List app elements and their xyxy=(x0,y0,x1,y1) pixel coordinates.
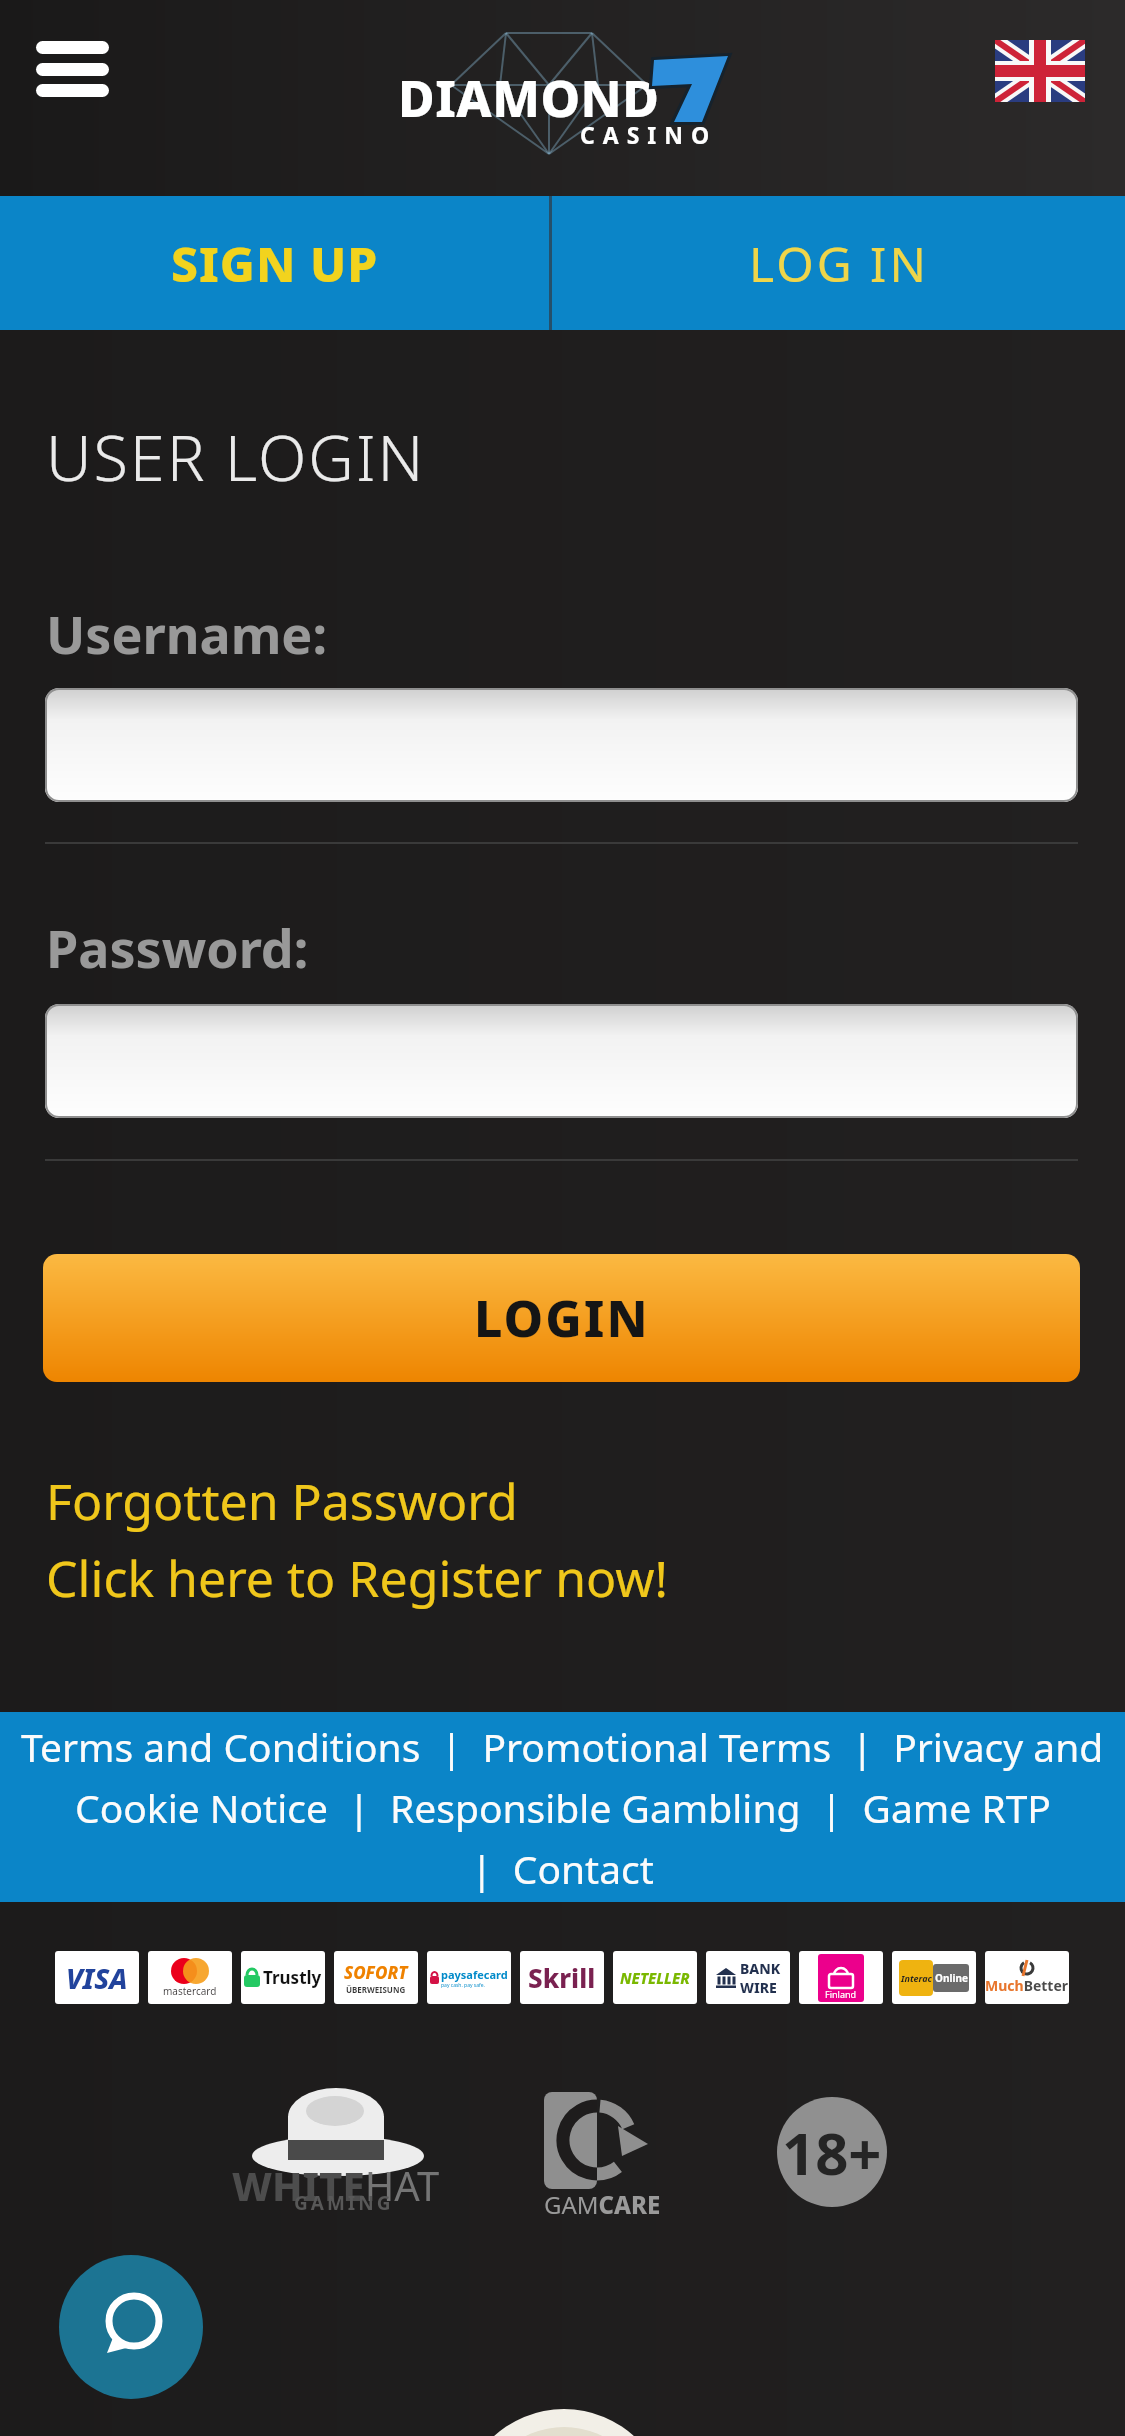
staticText: BANK xyxy=(740,1959,781,1978)
staticText: NETELLER xyxy=(620,1968,690,1988)
staticText: WIRE xyxy=(740,1978,777,1997)
staticText: LOG IN xyxy=(749,231,929,296)
button[interactable]: LOGIN xyxy=(43,1254,1080,1382)
staticText: GAMCARE xyxy=(544,2188,661,2221)
staticText: Password: xyxy=(46,912,309,983)
button[interactable]: | Contact xyxy=(471,1842,654,1895)
staticText: Finland xyxy=(825,1988,857,2000)
staticText: Online xyxy=(935,1971,968,1985)
staticText: VISA xyxy=(66,1959,128,1997)
staticText: SOFORT xyxy=(344,1961,408,1984)
button[interactable] xyxy=(59,2255,203,2399)
button[interactable] xyxy=(26,30,120,108)
staticText: CASINO xyxy=(580,119,718,150)
staticText: DIAMOND xyxy=(398,64,660,132)
staticText: Interac xyxy=(901,1972,932,1984)
staticText: LOGIN xyxy=(474,1284,650,1352)
staticText: MuchBetter xyxy=(985,1976,1069,1995)
staticText: WHITEHAT xyxy=(232,2158,440,2212)
button[interactable] xyxy=(995,40,1085,102)
staticText: Trustly xyxy=(263,1966,322,1989)
staticText: Username: xyxy=(46,598,328,669)
button[interactable]: LOG IN xyxy=(552,196,1125,330)
staticText: pay cash. pay safe. xyxy=(441,1982,485,1989)
staticText: 18+ xyxy=(782,2113,882,2192)
staticText: GAMING xyxy=(294,2190,394,2216)
button[interactable]: Terms and Conditions | Promotional Terms… xyxy=(21,1720,1104,1773)
button[interactable]: Cookie Notice | Responsible Gambling | G… xyxy=(75,1781,1051,1834)
staticText: USER LOGIN xyxy=(46,414,426,500)
button[interactable] xyxy=(45,1004,1078,1118)
staticText: paysafecard xyxy=(441,1967,508,1982)
staticText: Skrill xyxy=(528,1960,596,1995)
staticText: SIGN UP xyxy=(171,231,379,296)
button[interactable]: Forgotten Password xyxy=(46,1467,518,1535)
button[interactable]: Click here to Register now! xyxy=(46,1544,669,1612)
staticText: mastercard xyxy=(163,1984,217,1998)
staticText: ÜBERWEISUNG xyxy=(346,1984,406,1995)
button[interactable] xyxy=(45,688,1078,802)
button[interactable]: SIGN UP xyxy=(0,196,550,330)
